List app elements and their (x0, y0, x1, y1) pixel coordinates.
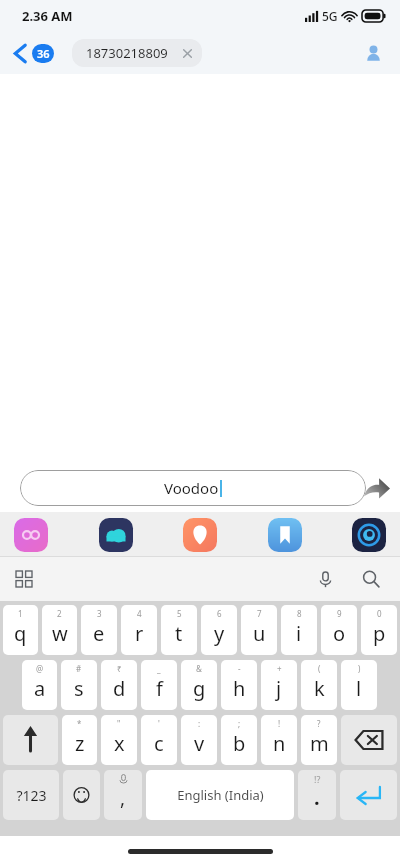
staticText: v (194, 730, 205, 757)
staticText: b (233, 730, 246, 757)
staticText: ?123 (16, 786, 47, 805)
staticText: ₹ (117, 663, 122, 674)
button[interactable]: _ (141, 660, 177, 710)
staticText: ( (318, 663, 321, 674)
button[interactable]: @ (22, 660, 57, 710)
staticText: . (314, 784, 320, 811)
staticText: i (296, 620, 302, 647)
staticText: c (154, 730, 164, 757)
staticText: !? (314, 773, 321, 785)
staticText: # (76, 663, 82, 674)
staticText: & (196, 663, 202, 674)
staticText: j (276, 675, 282, 702)
staticText: 5G (322, 8, 338, 24)
staticText: @ (36, 663, 44, 674)
button[interactable]: ) (341, 660, 377, 710)
staticText: 1 (18, 608, 23, 619)
staticText: y (214, 620, 225, 647)
button[interactable]: # (61, 660, 97, 710)
staticText: o (333, 620, 346, 647)
staticText: ) (358, 663, 361, 674)
staticText: s (74, 675, 84, 702)
staticText: , (120, 785, 126, 811)
button[interactable]: - (221, 660, 257, 710)
button[interactable]: 6 (201, 605, 237, 655)
staticText: 2.36 AM (22, 7, 73, 25)
button[interactable]: 7 (241, 605, 277, 655)
button[interactable]: Send (360, 471, 394, 505)
staticText: d (113, 675, 126, 702)
staticText: 6 (217, 608, 222, 619)
button[interactable]: : (181, 715, 217, 765)
button[interactable]: ? (301, 715, 337, 765)
button[interactable]: 0 (361, 605, 397, 655)
staticText: 9 (337, 608, 342, 619)
staticText: English (India) (177, 786, 264, 804)
staticText: ; (238, 718, 241, 729)
button[interactable]: ( (301, 660, 337, 710)
staticText: 5 (177, 608, 182, 619)
button[interactable]: ?123 (3, 770, 59, 820)
staticText: _ (157, 663, 161, 674)
staticText: * (77, 718, 82, 729)
button[interactable]: Backspace (341, 715, 397, 765)
button[interactable]: Enter (340, 770, 397, 820)
button[interactable]: * (62, 715, 97, 765)
staticText: e (93, 620, 105, 647)
staticText: n (273, 730, 286, 757)
button[interactable]: 5 (161, 605, 197, 655)
staticText: ! (278, 718, 281, 729)
staticText: " (117, 718, 121, 729)
button[interactable]: Apps (10, 565, 38, 593)
staticText: 4 (137, 608, 142, 619)
staticText: k (314, 675, 325, 702)
staticText: t (175, 620, 183, 647)
button[interactable]: 8 (281, 605, 317, 655)
staticText: r (135, 620, 144, 647)
staticText: ? (317, 718, 321, 729)
button[interactable]: , (104, 770, 142, 820)
staticText: a (34, 675, 46, 702)
staticText: l (356, 675, 362, 702)
button[interactable]: 3 (81, 605, 117, 655)
staticText: 0 (377, 608, 382, 619)
button[interactable]: Bookmark app (268, 518, 302, 552)
button[interactable]: " (101, 715, 137, 765)
staticText: Voodoo (164, 478, 219, 498)
button[interactable]: Search (356, 564, 386, 594)
staticText: p (373, 620, 386, 647)
button[interactable]: 1 (3, 605, 38, 655)
button[interactable]: & (181, 660, 217, 710)
button[interactable]: !? (298, 770, 336, 820)
button[interactable]: Voodoo (20, 470, 366, 506)
button[interactable]: ; (221, 715, 257, 765)
button[interactable]: Location app (183, 518, 217, 552)
staticText: z (75, 730, 85, 757)
staticText: h (233, 675, 246, 702)
button[interactable]: Shift (3, 715, 58, 765)
staticText: + (277, 663, 282, 674)
staticText: g (193, 675, 206, 702)
button[interactable]: Back, 36 unread (10, 40, 58, 67)
button[interactable]: Cloud app (99, 518, 133, 552)
staticText: - (238, 663, 241, 674)
button[interactable]: Infinity app (14, 518, 48, 552)
staticText: 36 (37, 46, 50, 61)
staticText: ' (158, 718, 160, 729)
button[interactable]: 18730218809 (72, 39, 202, 67)
button[interactable]: 2 (42, 605, 77, 655)
staticText: : (198, 718, 201, 729)
staticText: f (156, 675, 163, 702)
button[interactable]: 9 (321, 605, 357, 655)
button[interactable]: Music app (352, 518, 386, 552)
button[interactable]: 4 (121, 605, 157, 655)
button[interactable]: ! (261, 715, 297, 765)
button[interactable]: Contact (359, 39, 388, 68)
button[interactable]: English (India) (146, 770, 294, 820)
staticText: x (114, 730, 125, 757)
button[interactable]: Emoji (63, 770, 100, 820)
button[interactable]: ₹ (101, 660, 137, 710)
button[interactable]: ' (141, 715, 177, 765)
button[interactable]: + (261, 660, 297, 710)
button[interactable]: Voice input (311, 565, 340, 594)
